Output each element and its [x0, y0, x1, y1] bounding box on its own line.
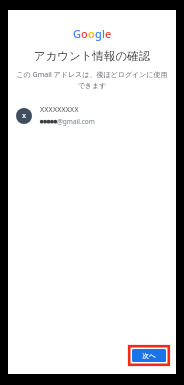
- staticText: XXXXXXXXX: [40, 105, 79, 115]
- staticText: アカウント情報の確認: [16, 49, 168, 63]
- staticText: l: [102, 26, 105, 41]
- staticText: o: [88, 26, 95, 41]
- staticText: @gmail.com: [57, 117, 95, 126]
- staticText: この Gmail アドレスは、後ほどログインに使用できます: [13, 70, 171, 90]
- staticText: 次へ: [142, 352, 156, 360]
- staticText: G: [73, 26, 81, 41]
- staticText: o: [81, 26, 88, 41]
- staticText: X: [22, 112, 26, 120]
- button[interactable]: X: [8, 102, 176, 129]
- button[interactable]: 次へ: [132, 349, 166, 362]
- staticText: e: [105, 26, 112, 41]
- staticText: g: [95, 26, 102, 41]
